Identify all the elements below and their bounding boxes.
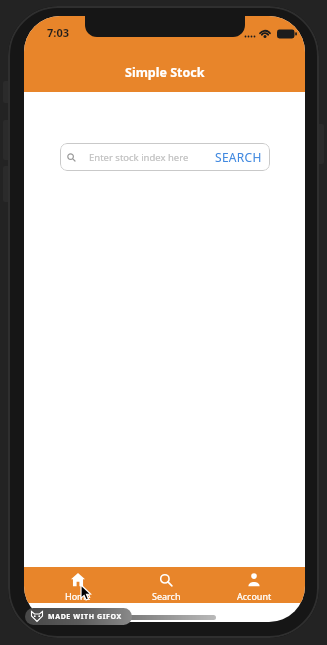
staticText: Simple Stock — [125, 64, 205, 81]
staticText: Home — [65, 590, 91, 602]
staticText: SEARCH — [215, 149, 262, 165]
staticText: Enter stock index here — [89, 151, 189, 164]
staticText: 7:03 — [47, 25, 69, 40]
staticText: Account — [237, 590, 272, 602]
button[interactable]: Enter stock index here — [60, 143, 270, 171]
button[interactable]: SEARCH — [215, 149, 262, 165]
staticText: Search — [152, 590, 181, 602]
staticText: MADE WITH GIFOX — [48, 612, 122, 622]
button[interactable]: MADE WITH GIFOX — [25, 608, 132, 625]
button[interactable]: Search — [122, 567, 210, 603]
button[interactable]: Home — [33, 567, 122, 603]
button[interactable]: Account — [210, 567, 298, 603]
